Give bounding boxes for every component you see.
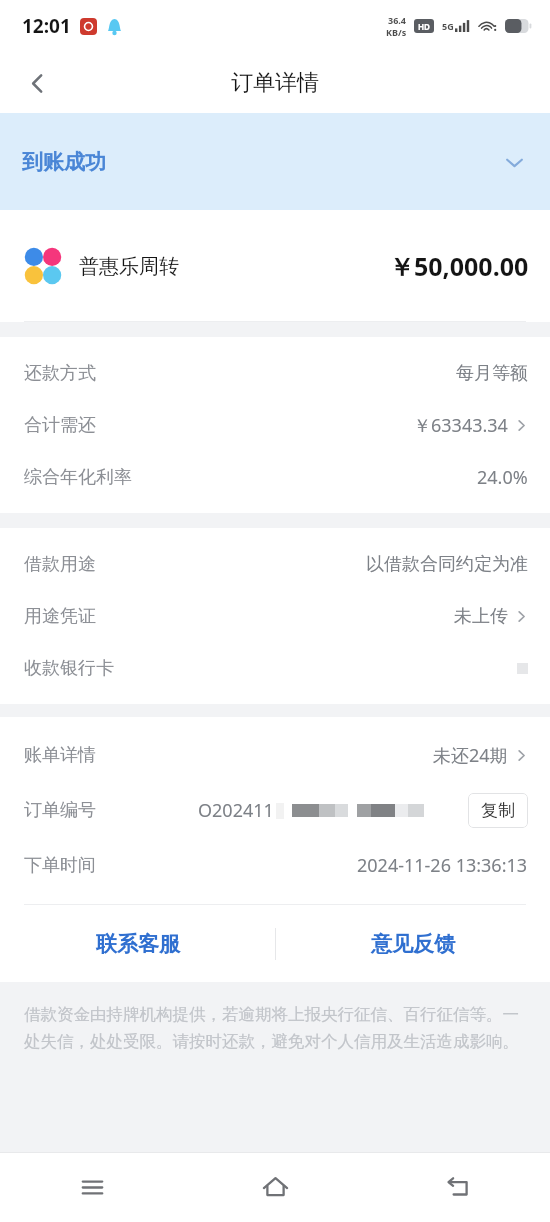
staticText: 每月等额 xyxy=(456,362,528,385)
staticText: 2024-11-26 13:36:13 xyxy=(357,853,528,878)
button[interactable]: 返回 xyxy=(367,1153,550,1222)
staticText: 以借款合同约定为准 xyxy=(366,553,528,576)
staticText: ￥50,000.00 xyxy=(389,249,529,283)
staticText: 用途凭证 xyxy=(24,605,96,628)
staticText: 意见反馈 xyxy=(371,931,455,957)
button[interactable]: 用途凭证 xyxy=(0,590,550,642)
staticText: 36.4 xyxy=(388,14,406,26)
staticText: HD xyxy=(418,21,430,32)
button[interactable]: 合计需还 xyxy=(0,399,550,451)
staticText: 还款方式 xyxy=(24,362,96,385)
staticText: 复制 xyxy=(481,800,515,821)
staticText: 订单详情 xyxy=(231,69,319,97)
staticText: 12:01 xyxy=(22,13,71,39)
button[interactable]: 到账成功 xyxy=(0,113,550,210)
staticText: O202411 xyxy=(198,798,274,823)
button[interactable]: 复制 xyxy=(468,793,528,828)
staticText: 联系客服 xyxy=(96,931,180,957)
staticText: 收款银行卡 xyxy=(24,657,114,680)
staticText: 综合年化利率 xyxy=(24,466,132,489)
button[interactable]: 联系客服 xyxy=(0,905,275,982)
staticText: 合计需还 xyxy=(24,414,96,437)
staticText: 借款资金由持牌机构提供，若逾期将上报央行征信、百行征信等。一处失信，处处受限。请… xyxy=(24,1004,528,1052)
staticText: KB/s xyxy=(386,26,407,38)
button[interactable]: 主页 xyxy=(184,1153,367,1222)
staticText: 未上传 xyxy=(454,605,508,628)
button[interactable]: 账单详情 xyxy=(0,728,550,782)
staticText: 到账成功 xyxy=(22,149,106,175)
staticText: 借款用途 xyxy=(24,553,96,576)
staticText: 未还24期 xyxy=(433,743,508,768)
staticText: 账单详情 xyxy=(24,744,96,767)
staticText: 24.0% xyxy=(477,465,528,490)
staticText: 订单编号 xyxy=(24,799,96,822)
button[interactable]: 返回 xyxy=(10,56,64,110)
staticText: 下单时间 xyxy=(24,854,96,877)
button[interactable]: 意见反馈 xyxy=(275,905,550,982)
button[interactable]: 收款银行卡 xyxy=(0,642,550,694)
button[interactable]: 最近任务 xyxy=(0,1153,184,1222)
staticText: ￥63343.34 xyxy=(413,413,508,438)
staticText: 普惠乐周转 xyxy=(79,254,179,279)
staticText: 5G xyxy=(442,20,454,32)
